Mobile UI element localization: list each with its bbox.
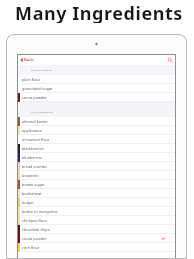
staticText: BAKING STAPLES — [31, 68, 52, 71]
button[interactable]: cocoa powder — [18, 93, 175, 102]
staticText: chocolate chips — [22, 227, 50, 232]
staticText: brown sugar — [22, 182, 45, 187]
staticText: buckwheat — [22, 191, 42, 196]
staticText: Many Ingredients — [15, 1, 183, 23]
staticText: plain flour — [22, 77, 41, 82]
button[interactable]: granulated sugar — [18, 84, 175, 93]
staticText: applesauce — [22, 128, 43, 133]
staticText: blueberries — [22, 155, 43, 160]
staticText: cocoa powder — [22, 236, 47, 241]
staticText: bulgur — [22, 200, 34, 205]
staticText: chickpea flour — [22, 218, 48, 223]
staticText: granulated sugar — [22, 86, 53, 91]
button[interactable]: bread crumbs — [18, 162, 175, 171]
button[interactable]: blueberries — [18, 153, 175, 162]
staticText: brownies — [22, 173, 39, 178]
staticText: arrowroot flour — [22, 137, 50, 142]
staticText: butter or margarine — [22, 209, 58, 214]
button[interactable]: bulgur — [18, 198, 175, 207]
button[interactable]: butter or margarine — [18, 207, 175, 216]
button[interactable]: arrowroot flour — [18, 135, 175, 144]
staticText: Back — [24, 57, 34, 63]
staticText: cocoa powder — [22, 95, 47, 100]
staticText: almond butter — [22, 119, 48, 124]
button[interactable]: Search — [167, 57, 173, 63]
button[interactable]: chocolate chips — [18, 225, 175, 234]
button[interactable]: blackberries — [18, 144, 175, 153]
button[interactable]: plain flour — [18, 75, 175, 84]
button[interactable]: buckwheat — [18, 189, 175, 198]
button[interactable]: Back — [18, 55, 37, 65]
staticText: blackberries — [22, 146, 44, 151]
button[interactable]: almond butter — [18, 117, 175, 126]
button[interactable]: corn flour — [18, 243, 175, 252]
button[interactable]: applesauce — [18, 126, 175, 135]
staticText: ALL INGREDIENTS — [31, 110, 54, 113]
button[interactable]: chickpea flour — [18, 216, 175, 225]
button[interactable]: cocoa powder — [18, 234, 175, 243]
staticText: corn flour — [22, 245, 40, 250]
button[interactable]: brownies — [18, 171, 175, 180]
staticText: bread crumbs — [22, 164, 47, 169]
button[interactable]: brown sugar — [18, 180, 175, 189]
